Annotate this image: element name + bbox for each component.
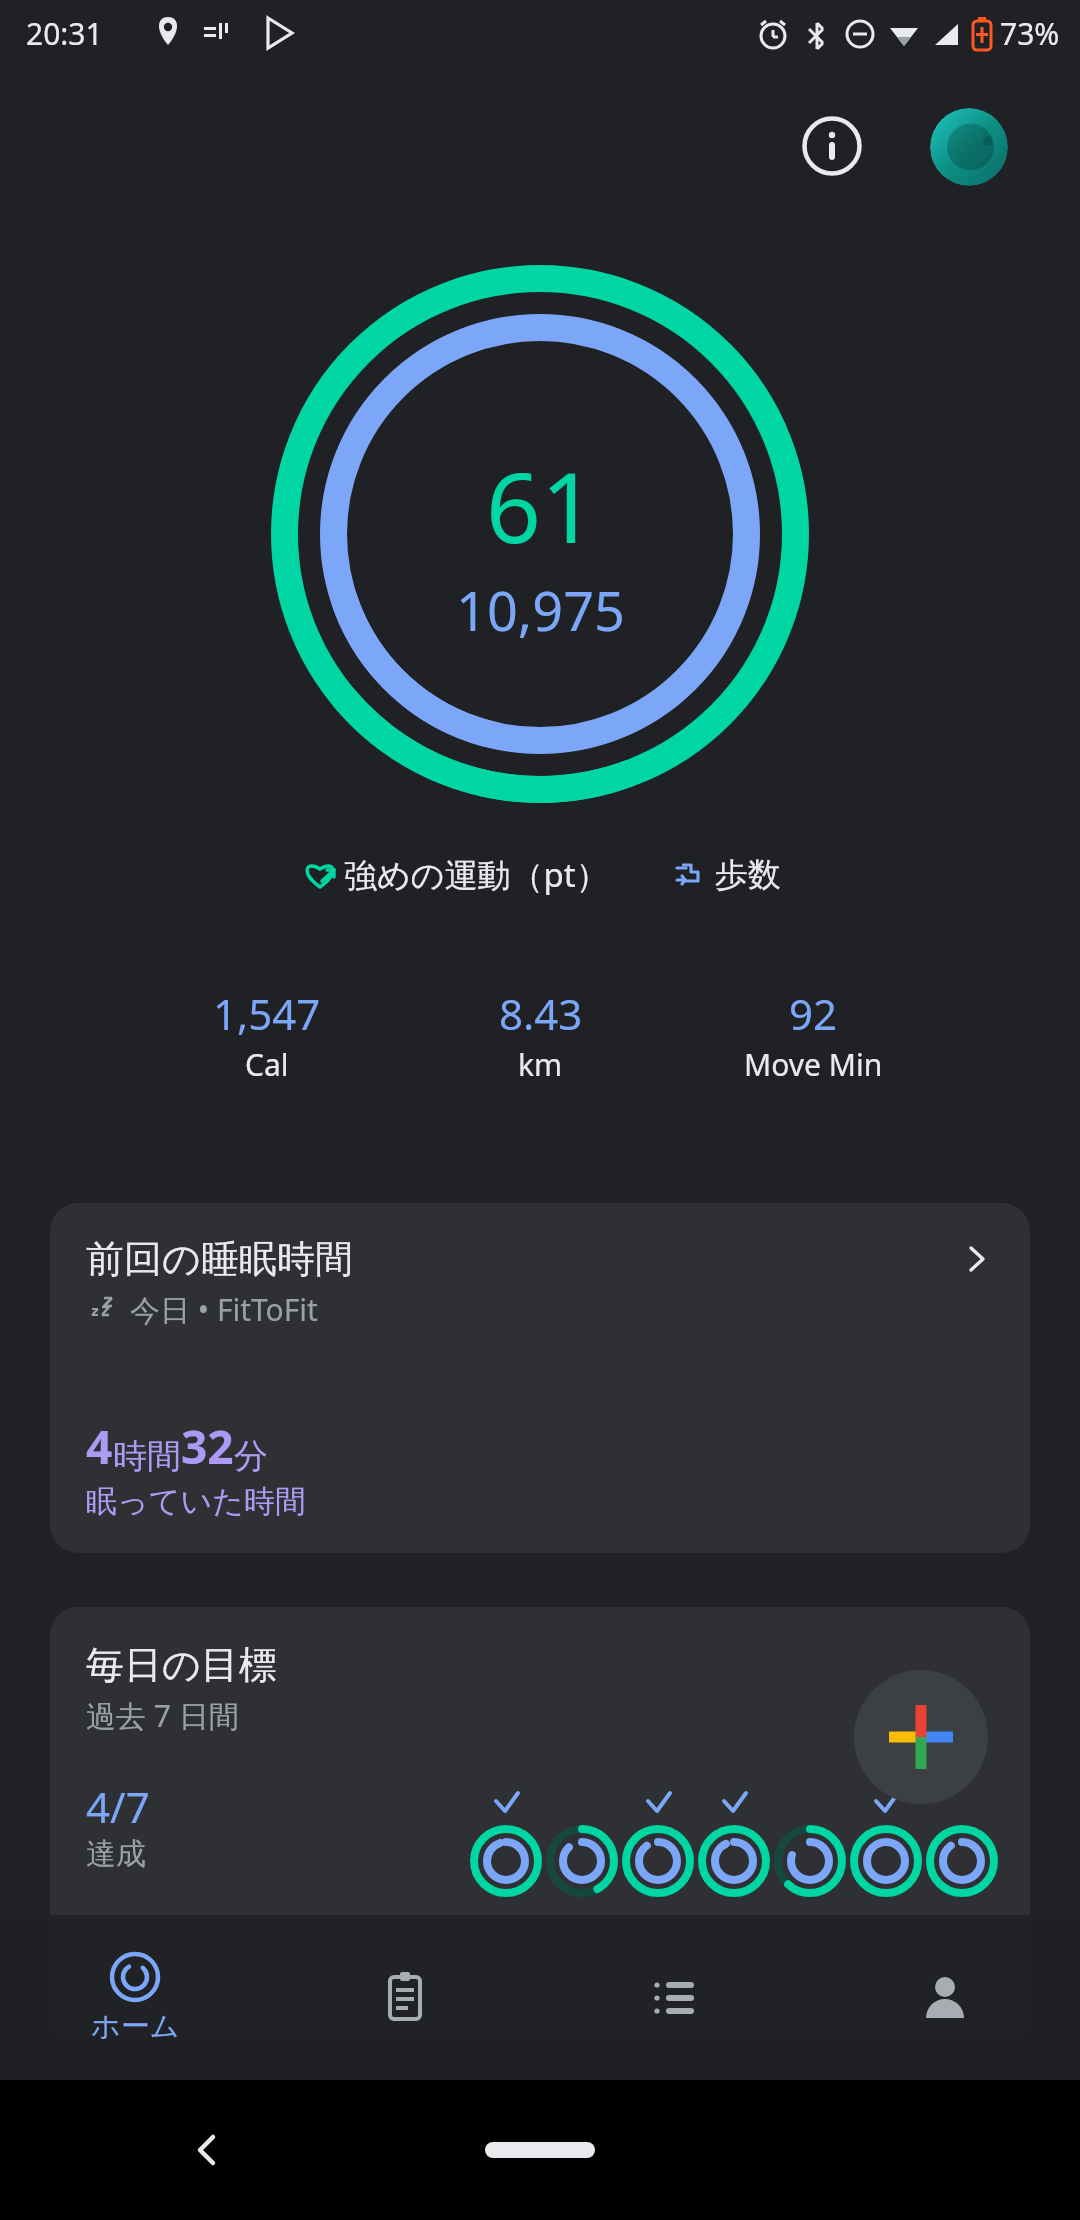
button[interactable]: Information — [796, 110, 868, 182]
button[interactable]: 8.43 — [404, 985, 677, 1085]
staticText: 強めの運動（pt） — [344, 852, 609, 897]
staticText: Move Min — [744, 1044, 883, 1085]
staticText: 61 — [486, 440, 596, 571]
button[interactable]: Profile — [810, 1915, 1080, 2080]
staticText: 8.43 — [499, 985, 583, 1042]
button[interactable]: Home — [485, 2142, 595, 2158]
staticText: 32 — [181, 1415, 234, 1478]
staticText: 4/7 — [86, 1778, 150, 1835]
staticText: 眠っていた時間 — [86, 1482, 306, 1521]
staticText: Cal — [245, 1044, 289, 1085]
staticText: 10,975 — [456, 573, 625, 647]
staticText: 毎日の目標 — [86, 1641, 277, 1689]
button[interactable]: 強めの運動（pt） — [296, 848, 613, 901]
button[interactable]: ホーム — [0, 1915, 270, 2080]
button[interactable]: Browse — [540, 1915, 810, 2080]
staticText: 時間 — [113, 1435, 181, 1478]
staticText: 分 — [234, 1435, 268, 1478]
staticText: 73% — [1000, 13, 1060, 54]
button[interactable]: 92 — [677, 985, 950, 1085]
button[interactable]: Journal — [270, 1915, 540, 2080]
staticText: 過去 7 日間 — [86, 1695, 239, 1736]
button[interactable]: 前回の睡眠時間 — [50, 1203, 1030, 1553]
button[interactable]: Account — [930, 108, 1008, 186]
staticText: 歩数 — [715, 854, 781, 896]
button[interactable]: Back — [185, 2127, 231, 2173]
staticText: 1,547 — [213, 985, 321, 1042]
staticText: km — [518, 1044, 563, 1085]
staticText: 4 — [86, 1415, 113, 1478]
staticText: 達成 — [86, 1835, 146, 1873]
staticText: ホーム — [91, 2008, 180, 2045]
button[interactable]: 歩数 — [667, 850, 785, 900]
button[interactable]: 1,547 — [130, 985, 404, 1085]
button[interactable]: 毎日の目標 — [50, 1607, 1030, 2037]
staticText: 今日 • FitToFit — [130, 1289, 318, 1330]
staticText: 20:31 — [26, 13, 103, 54]
staticText: 92 — [789, 985, 838, 1042]
button[interactable]: Add — [854, 1670, 988, 1804]
staticText: 前回の睡眠時間 — [86, 1235, 958, 1283]
